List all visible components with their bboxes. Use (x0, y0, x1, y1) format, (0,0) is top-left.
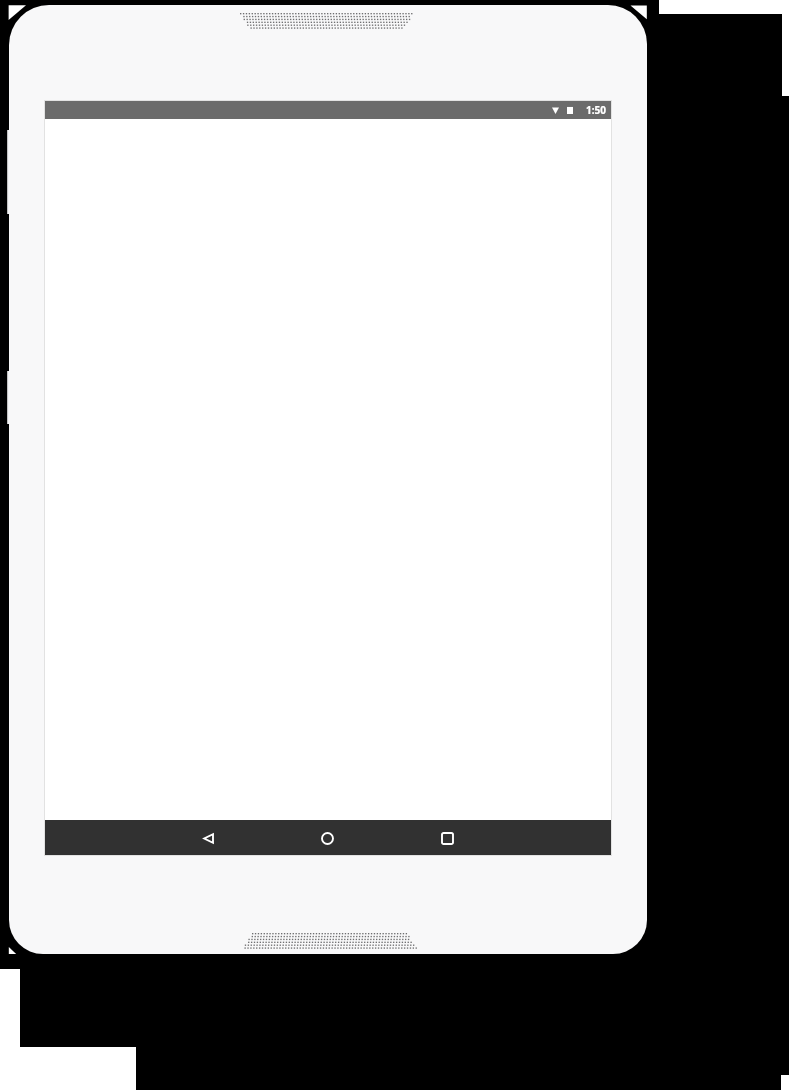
button[interactable]: Back (190, 820, 226, 856)
button[interactable]: Home (309, 820, 345, 856)
button[interactable]: Recents (429, 820, 465, 856)
staticText: 1:50 (586, 103, 606, 117)
